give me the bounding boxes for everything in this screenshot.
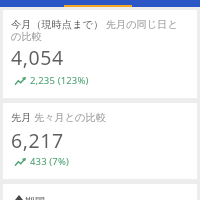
staticText: 2,235 (123%)	[30, 74, 89, 87]
button[interactable]: 期間	[3, 184, 197, 200]
staticText: 4,054	[11, 44, 64, 71]
staticText: 433 (7%)	[30, 155, 70, 168]
button[interactable]: 先月 先々月との比較	[3, 103, 197, 179]
button[interactable]: 今月（現時点まで） 先月の同じ日との比較	[3, 10, 197, 98]
staticText: 先月 先々月との比較	[11, 110, 106, 124]
staticText: 期間	[25, 195, 46, 200]
staticText: 今月（現時点まで） 先月の同じ日との比較	[11, 17, 181, 43]
staticText: 6,217	[11, 127, 64, 154]
